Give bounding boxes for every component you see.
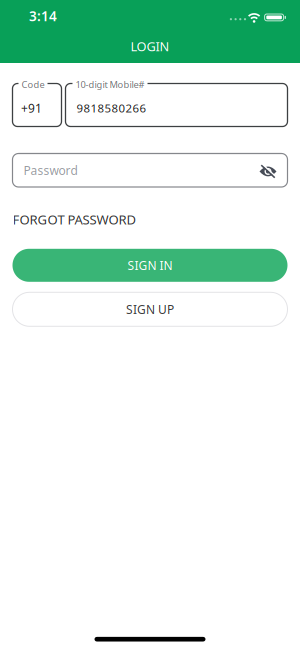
staticText: 3:14	[29, 7, 57, 25]
button[interactable]: SIGN UP	[12, 292, 287, 326]
button[interactable]: Show password	[259, 162, 287, 178]
staticText: Code	[21, 78, 44, 91]
button[interactable]: Mobile number	[65, 79, 287, 126]
staticText: SIGN UP	[126, 301, 174, 317]
staticText: LOGIN	[130, 38, 169, 55]
staticText: 9818580266	[76, 100, 146, 116]
button[interactable]: Country code	[12, 79, 61, 126]
button[interactable]: SIGN IN	[12, 249, 287, 282]
staticText: Password	[23, 162, 77, 178]
staticText: 10-digit Mobile#	[75, 78, 144, 91]
staticText: FORGOT PASSWORD	[12, 210, 136, 228]
staticText: SIGN IN	[127, 257, 172, 273]
staticText: +91	[21, 100, 42, 116]
button[interactable]: FORGOT PASSWORD	[12, 210, 136, 228]
button[interactable]: Password	[12, 153, 287, 187]
